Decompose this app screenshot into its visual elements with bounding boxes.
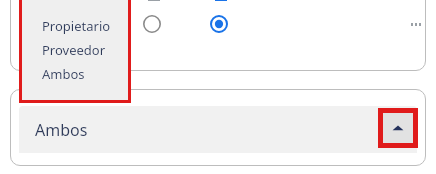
button[interactable]: Ambos xyxy=(19,106,417,153)
staticText: Ambos xyxy=(42,65,85,83)
button[interactable]: Option one xyxy=(140,12,164,36)
button[interactable]: More options xyxy=(404,12,428,36)
button[interactable]: Propietario xyxy=(22,14,128,38)
button[interactable]: Ambos xyxy=(22,62,128,86)
staticText: Propietario xyxy=(42,17,111,35)
button[interactable]: Collapse xyxy=(378,108,418,148)
staticText: Ambos xyxy=(35,119,88,141)
button[interactable]: Option two selected xyxy=(207,12,231,36)
staticText: Proveedor xyxy=(42,41,106,59)
button[interactable]: Proveedor xyxy=(22,38,128,62)
